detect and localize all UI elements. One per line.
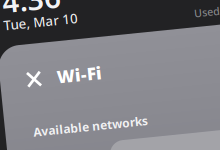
staticText: 4:36 [10, 0, 69, 11]
staticText: Available networks [28, 116, 143, 132]
button[interactable]: Close [26, 63, 42, 80]
staticText: Wi-Fi [57, 60, 102, 83]
staticText: Used [200, 15, 220, 29]
staticText: Tue, Mar 10 [9, 6, 84, 24]
